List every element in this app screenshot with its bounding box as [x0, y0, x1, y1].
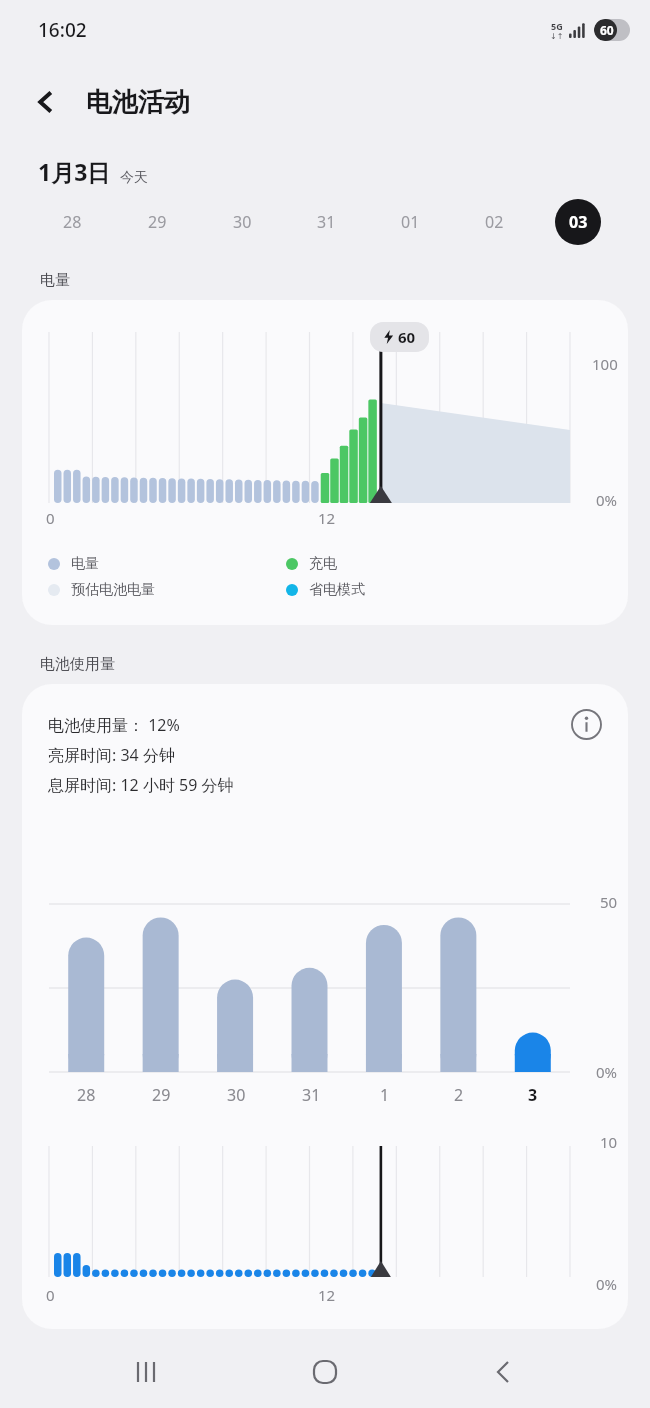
- staticText: 29: [148, 211, 167, 233]
- staticText: 亮屏时间: 34 分钟: [48, 744, 175, 766]
- staticText: 30: [233, 211, 252, 233]
- staticText: 02: [485, 211, 504, 233]
- staticText: 12: [318, 1285, 336, 1305]
- button[interactable]: 02: [452, 187, 536, 257]
- staticText: 01: [401, 211, 420, 233]
- staticText: 息屏时间: 12 小时 59 分钟: [48, 774, 234, 796]
- button[interactable]: Recents: [118, 1342, 178, 1402]
- staticText: 电池使用量: [40, 655, 115, 674]
- staticText: 0: [46, 508, 55, 528]
- button[interactable]: 100: [22, 300, 628, 625]
- staticText: 28: [77, 1084, 96, 1106]
- staticText: 0%: [596, 1274, 618, 1294]
- button[interactable]: 31: [284, 187, 368, 257]
- staticText: 电量: [71, 555, 99, 573]
- button[interactable]: Back: [473, 1342, 533, 1402]
- staticText: 3: [528, 1084, 538, 1106]
- button[interactable]: 01: [368, 187, 452, 257]
- staticText: 31: [302, 1084, 321, 1106]
- staticText: 电池使用量： 12%: [48, 714, 180, 736]
- button[interactable]: 03: [536, 187, 620, 257]
- button[interactable]: 29: [115, 187, 200, 257]
- staticText: 100: [592, 354, 618, 374]
- staticText: 60: [398, 327, 416, 347]
- staticText: 30: [227, 1084, 246, 1106]
- staticText: 省电模式: [309, 581, 365, 599]
- button[interactable]: Info: [564, 702, 608, 746]
- staticText: 29: [152, 1084, 171, 1106]
- staticText: 1月3日: [38, 156, 111, 187]
- staticText: 今天: [120, 169, 148, 187]
- staticText: 28: [63, 211, 82, 233]
- staticText: 12: [318, 508, 336, 528]
- staticText: 50: [600, 892, 618, 912]
- staticText: 2: [454, 1084, 464, 1106]
- button[interactable]: 28: [30, 187, 115, 257]
- staticText: 5G: [551, 20, 563, 32]
- staticText: 03: [569, 211, 588, 233]
- staticText: ↓↑: [550, 32, 564, 41]
- button[interactable]: 30: [200, 187, 284, 257]
- staticText: 电池活动: [86, 86, 190, 119]
- button[interactable]: Home: [295, 1342, 355, 1402]
- staticText: 电量: [40, 271, 70, 290]
- staticText: 预估电池电量: [71, 581, 155, 599]
- staticText: 充电: [309, 555, 337, 573]
- staticText: 31: [317, 211, 336, 233]
- staticText: 0: [46, 1285, 55, 1305]
- button[interactable]: 电池使用量： 12%: [22, 684, 628, 1329]
- button[interactable]: Back: [20, 76, 72, 128]
- staticText: 0%: [596, 1062, 618, 1082]
- staticText: 0%: [596, 490, 618, 510]
- staticText: 10: [600, 1132, 618, 1152]
- staticText: 1: [380, 1084, 390, 1106]
- staticText: 60: [600, 22, 614, 38]
- staticText: 16:02: [38, 17, 87, 43]
